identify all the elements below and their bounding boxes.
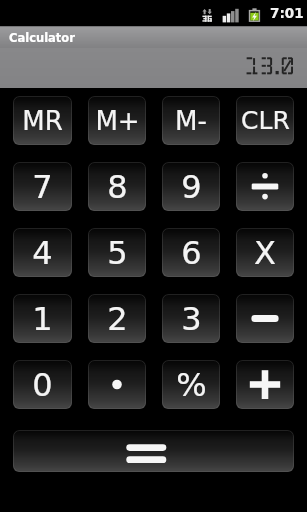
button[interactable]: 5 — [88, 228, 146, 277]
staticText: 6 — [181, 234, 202, 271]
staticText: 1 — [32, 300, 53, 337]
button[interactable]: 7 — [13, 162, 72, 211]
button[interactable]: 6 — [162, 228, 220, 277]
button[interactable]: 8 — [88, 162, 146, 211]
staticText: 8 — [107, 168, 128, 205]
button[interactable]: Plus — [236, 360, 294, 409]
staticText: M- — [175, 106, 207, 136]
staticText: 7 — [32, 168, 53, 205]
staticText: M+ — [95, 106, 140, 136]
button[interactable]: Divide — [236, 162, 294, 211]
staticText: % — [176, 366, 207, 403]
button[interactable]: M- — [162, 96, 220, 145]
staticText: 5 — [107, 234, 128, 271]
button[interactable]: MR — [13, 96, 72, 145]
button[interactable]: % — [162, 360, 220, 409]
button[interactable]: X — [236, 228, 294, 277]
staticText: 2 — [107, 300, 128, 337]
button[interactable]: 9 — [162, 162, 220, 211]
button[interactable]: Minus — [236, 294, 294, 343]
staticText: 4 — [32, 234, 53, 271]
button[interactable]: Equals — [13, 430, 294, 472]
staticText: 3 — [181, 300, 202, 337]
staticText: 0 — [32, 366, 53, 403]
staticText: 9 — [181, 168, 202, 205]
button[interactable]: 4 — [13, 228, 72, 277]
button[interactable]: 1 — [13, 294, 72, 343]
button[interactable]: 2 — [88, 294, 146, 343]
button[interactable]: Decimal point — [88, 360, 146, 409]
staticText: X — [254, 234, 276, 271]
staticText: MR — [22, 106, 63, 136]
button[interactable]: 3 — [162, 294, 220, 343]
button[interactable]: M+ — [88, 96, 146, 145]
staticText: Calculator — [9, 31, 75, 44]
button[interactable]: CLR — [236, 96, 294, 145]
staticText: 7:01 — [270, 5, 304, 21]
button[interactable]: 0 — [13, 360, 72, 409]
staticText: CLR — [241, 106, 290, 135]
